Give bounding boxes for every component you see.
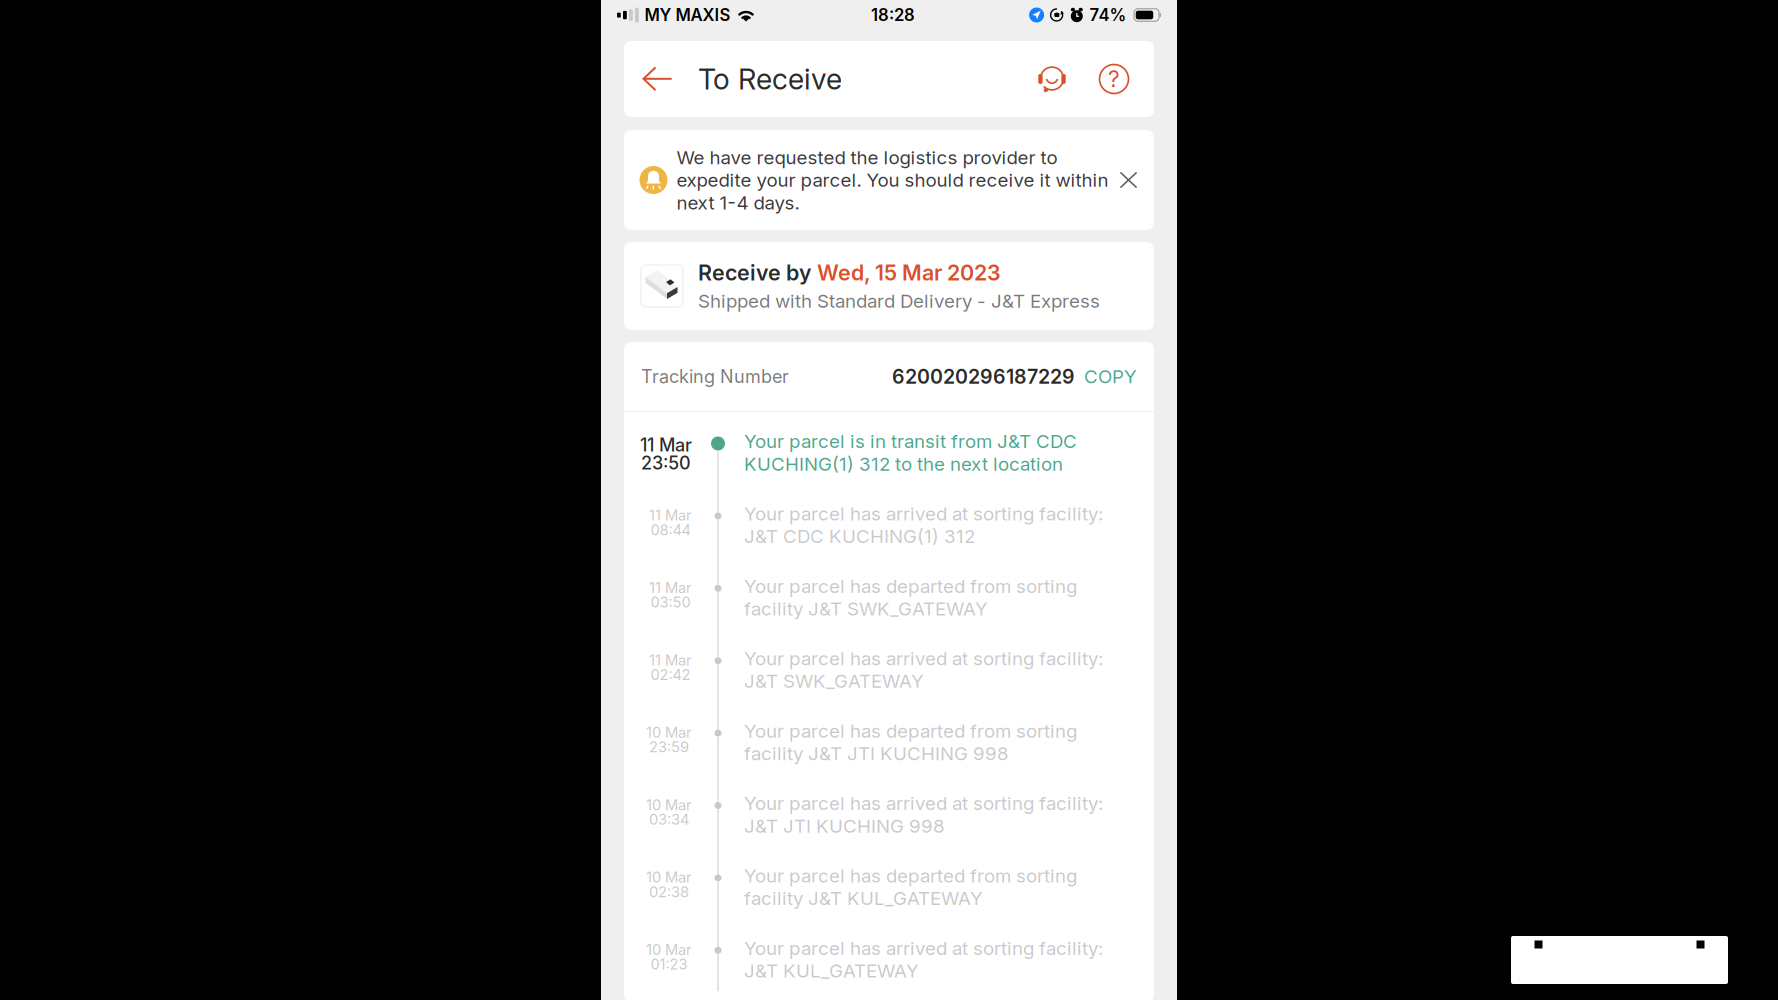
staticText: Wed, 15 Mar 2023 [817, 260, 1001, 286]
staticText: 23:50 [641, 452, 691, 474]
staticText: 10 Mar [646, 868, 692, 886]
staticText: To Receive [698, 62, 842, 96]
staticText: 11 Mar [649, 579, 692, 596]
staticText: Your parcel has departed from sorting fa… [744, 864, 1077, 910]
staticText: Your parcel has arrived at sorting facil… [744, 502, 1103, 548]
staticText: Your parcel is in transit from J&T CDC K… [744, 430, 1077, 475]
staticText: We have requested the logistics provider… [676, 146, 1108, 214]
staticText: 11 Mar [640, 434, 692, 456]
staticText: 10 Mar [646, 941, 692, 958]
button[interactable]: Back [633, 51, 682, 107]
staticText: Shipped with Standard Delivery - J&T Exp… [698, 290, 1100, 312]
button[interactable]: Help [1083, 51, 1145, 107]
button[interactable]: COPY [1075, 365, 1137, 388]
staticText: 620020296187229 [892, 365, 1075, 388]
staticText: Receive by [698, 260, 817, 286]
staticText: COPY [1084, 365, 1137, 388]
staticText: Tracking Number [641, 366, 789, 387]
staticText: 11 Mar [649, 506, 692, 524]
staticText: 01:23 [650, 955, 687, 973]
staticText: 10 Mar [646, 796, 692, 814]
staticText: 03:34 [649, 810, 689, 828]
staticText: 10 Mar [646, 724, 692, 741]
staticText: Your parcel has departed from sorting fa… [744, 720, 1077, 765]
staticText: 02:42 [650, 666, 690, 683]
staticText: ? [1108, 65, 1120, 93]
staticText: 18:28 [871, 5, 915, 25]
staticText: 23:59 [649, 738, 689, 756]
button[interactable]: Dismiss [1112, 163, 1144, 197]
staticText: MY MAXIS [644, 5, 730, 25]
staticText: Your parcel has arrived at sorting facil… [744, 792, 1103, 837]
staticText: Your parcel has departed from sorting fa… [744, 575, 1077, 620]
staticText: Your parcel has arrived at sorting facil… [744, 647, 1103, 692]
staticText: Your parcel has arrived at sorting facil… [744, 937, 1103, 982]
staticText: 74% [1089, 5, 1126, 25]
staticText: 03:50 [650, 593, 690, 611]
button[interactable]: Chat support [1021, 51, 1083, 107]
staticText: 08:44 [650, 521, 690, 539]
staticText: 11 Mar [649, 651, 692, 669]
staticText: 02:38 [649, 883, 689, 901]
